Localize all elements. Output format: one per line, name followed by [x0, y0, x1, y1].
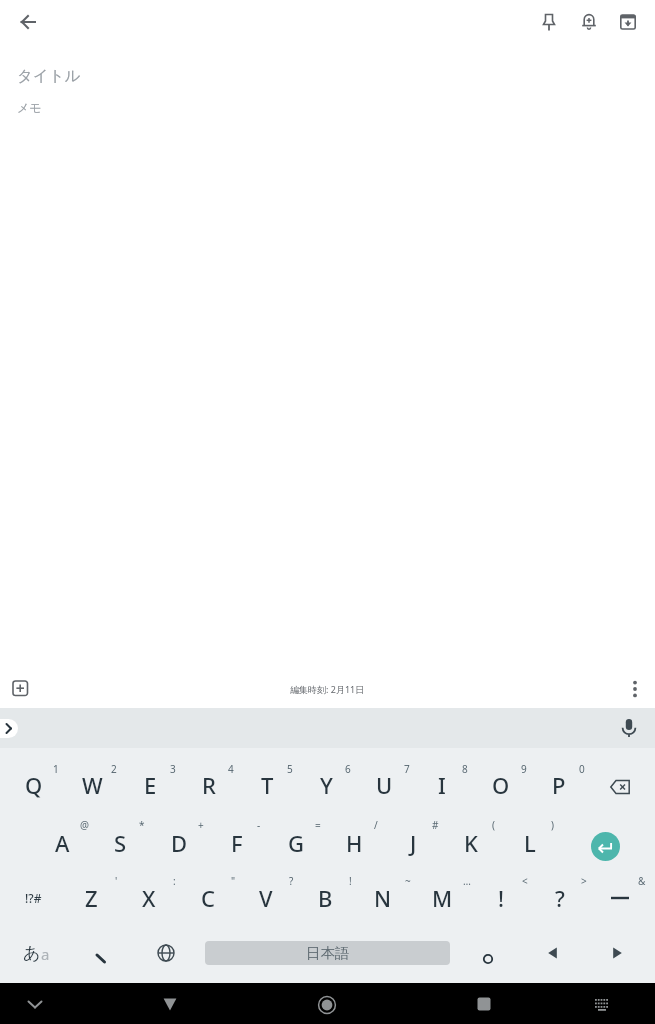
- staticText: 1: [53, 762, 59, 776]
- button[interactable]: [545, 945, 561, 961]
- staticText: 9: [521, 762, 527, 776]
- staticText: U: [376, 770, 393, 800]
- button[interactable]: 編集時刻: 2月11日: [217, 674, 437, 704]
- button[interactable]: Y: [293, 762, 359, 808]
- staticText: I: [438, 770, 446, 800]
- staticText: …: [463, 874, 471, 888]
- button[interactable]: I: [409, 762, 475, 808]
- button[interactable]: [475, 995, 493, 1013]
- button[interactable]: [578, 11, 600, 33]
- staticText: 5: [287, 762, 293, 776]
- button[interactable]: [607, 888, 633, 908]
- button[interactable]: [617, 11, 639, 33]
- staticText: ": [231, 874, 236, 888]
- button[interactable]: B: [292, 875, 358, 921]
- button[interactable]: ?: [527, 875, 593, 921]
- staticText: J: [410, 828, 417, 858]
- staticText: ): [551, 818, 554, 832]
- button[interactable]: あ: [14, 933, 58, 973]
- button[interactable]: [16, 10, 40, 34]
- staticText: P: [552, 770, 566, 800]
- button[interactable]: S: [87, 820, 153, 866]
- button[interactable]: R: [176, 762, 242, 808]
- button[interactable]: 日本語: [205, 941, 450, 965]
- staticText: N: [374, 883, 392, 913]
- button[interactable]: E: [117, 762, 183, 808]
- staticText: M: [432, 883, 453, 913]
- staticText: F: [231, 828, 243, 858]
- button[interactable]: U: [351, 762, 417, 808]
- staticText: =: [315, 818, 321, 832]
- button[interactable]: [0, 719, 18, 738]
- staticText: D: [171, 828, 188, 858]
- staticText: C: [201, 883, 215, 913]
- button[interactable]: K: [438, 820, 504, 866]
- staticText: R: [202, 770, 216, 800]
- staticText: Y: [320, 770, 333, 800]
- button[interactable]: !?#: [0, 875, 66, 921]
- button[interactable]: T: [234, 762, 300, 808]
- button[interactable]: V: [233, 875, 299, 921]
- button[interactable]: L: [497, 820, 563, 866]
- button[interactable]: [91, 949, 111, 969]
- button[interactable]: G: [263, 820, 329, 866]
- staticText: メモ: [17, 100, 42, 114]
- button[interactable]: W: [59, 762, 125, 808]
- button[interactable]: X: [116, 875, 182, 921]
- staticText: V: [259, 883, 273, 913]
- button[interactable]: [315, 993, 339, 1017]
- button[interactable]: [160, 995, 180, 1013]
- button[interactable]: [626, 679, 644, 699]
- button[interactable]: M: [409, 875, 475, 921]
- button[interactable]: [538, 11, 560, 33]
- staticText: L: [524, 828, 536, 858]
- staticText: 日本語: [306, 944, 350, 962]
- staticText: T: [261, 770, 274, 800]
- staticText: (: [492, 818, 495, 832]
- button[interactable]: J: [380, 820, 446, 866]
- staticText: O: [492, 770, 510, 800]
- button[interactable]: [608, 777, 632, 797]
- button[interactable]: [24, 993, 46, 1015]
- button[interactable]: [478, 949, 498, 969]
- staticText: 7: [404, 762, 410, 776]
- button[interactable]: !: [468, 875, 534, 921]
- button[interactable]: Z: [58, 875, 124, 921]
- staticText: :: [173, 874, 176, 888]
- button[interactable]: A: [29, 820, 95, 866]
- button[interactable]: [609, 945, 625, 961]
- staticText: -: [257, 818, 261, 832]
- button[interactable]: F: [204, 820, 270, 866]
- button[interactable]: [591, 995, 613, 1013]
- staticText: 0: [579, 762, 585, 776]
- staticText: a: [41, 944, 50, 964]
- button[interactable]: [618, 716, 640, 740]
- staticText: Q: [25, 770, 43, 800]
- staticText: A: [55, 828, 70, 858]
- staticText: ?: [289, 874, 294, 888]
- button[interactable]: P: [526, 762, 592, 808]
- staticText: W: [82, 770, 103, 800]
- staticText: ~: [405, 874, 411, 888]
- staticText: @: [80, 818, 89, 832]
- staticText: !: [498, 883, 505, 913]
- button[interactable]: C: [175, 875, 241, 921]
- staticText: Z: [85, 883, 98, 913]
- staticText: K: [464, 828, 478, 858]
- button[interactable]: [591, 832, 620, 861]
- staticText: 3: [170, 762, 176, 776]
- button[interactable]: [156, 943, 176, 963]
- button[interactable]: [10, 678, 30, 698]
- button[interactable]: D: [146, 820, 212, 866]
- button[interactable]: O: [468, 762, 534, 808]
- staticText: <: [522, 874, 528, 888]
- button[interactable]: Q: [1, 762, 67, 808]
- staticText: >: [581, 874, 587, 888]
- staticText: E: [144, 770, 157, 800]
- staticText: !?#: [25, 890, 42, 906]
- staticText: 編集時刻: 2月11日: [290, 683, 365, 695]
- button[interactable]: N: [350, 875, 416, 921]
- staticText: *: [139, 818, 145, 832]
- staticText: B: [318, 883, 333, 913]
- button[interactable]: H: [321, 820, 387, 866]
